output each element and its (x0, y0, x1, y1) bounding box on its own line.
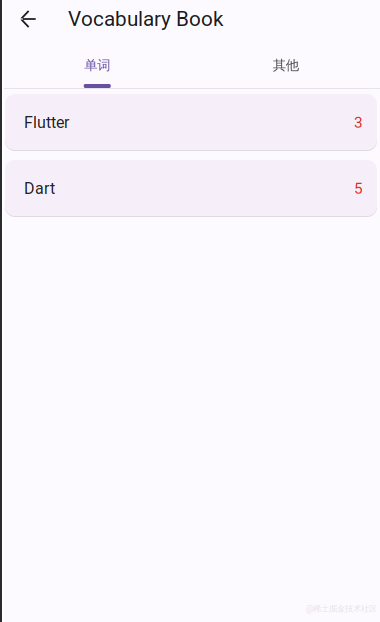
staticText: Vocabulary Book (68, 7, 223, 31)
staticText: 3 (354, 113, 363, 131)
button[interactable]: 单词 (3, 38, 191, 88)
staticText: 其他 (273, 57, 299, 74)
button[interactable]: 其他 (191, 38, 380, 88)
staticText: Dart (24, 179, 55, 198)
staticText: Flutter (24, 113, 69, 132)
button[interactable]: Back (9, 0, 47, 38)
staticText: 单词 (84, 57, 110, 74)
button[interactable]: Dart (5, 160, 377, 217)
staticText: @稀土掘金技术社区 (306, 604, 377, 614)
staticText: 5 (354, 179, 363, 197)
button[interactable]: Flutter (5, 94, 377, 151)
